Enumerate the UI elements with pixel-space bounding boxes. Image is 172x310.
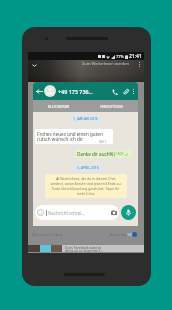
button[interactable]: Nachricht schrei… bbox=[35, 205, 119, 220]
staticText: Does Facebook want to dress up as Snapch… bbox=[65, 245, 103, 252]
staticText: Nächstes Video bbox=[32, 232, 63, 238]
staticText: Danke dir auch%) bbox=[77, 151, 115, 157]
staticText: Frohes neues und einen guten rutsch wüns… bbox=[37, 131, 103, 143]
button[interactable]: Nachrichten, die du in diesem Chat bbox=[45, 174, 127, 198]
staticText: Nachricht schrei… bbox=[48, 210, 85, 216]
button[interactable]: BLOCKIEREN bbox=[33, 100, 85, 112]
button[interactable]: Record voice message bbox=[121, 205, 136, 220]
button[interactable]: HINZUFÜGEN bbox=[85, 100, 138, 112]
staticText: 77% bbox=[116, 54, 124, 59]
button[interactable]: Attach bbox=[121, 87, 130, 96]
staticText: 21:41 bbox=[129, 53, 142, 60]
staticText: sendest, sowie Anrufe sind jetzt mit End… bbox=[50, 181, 122, 196]
button[interactable]: More options bbox=[131, 87, 136, 96]
staticText: 1. JANUAR 2016 bbox=[73, 116, 98, 121]
staticText: Autoplay bbox=[110, 232, 128, 238]
staticText: 00:17 bbox=[99, 140, 107, 144]
staticText: BLOCKIEREN bbox=[48, 104, 70, 109]
staticText: +49 173 736… bbox=[58, 88, 93, 95]
staticText: Zum Weiterlesen werden bbox=[82, 61, 129, 66]
staticText: Nachrichten, die du in diesem Chat bbox=[60, 176, 116, 181]
staticText: HINZUFÜGEN bbox=[100, 104, 123, 109]
button[interactable]: Call bbox=[110, 87, 119, 96]
button[interactable]: Back bbox=[35, 87, 43, 95]
staticText: 18:23 bbox=[116, 152, 124, 156]
staticText: 3. APRIL 2016 bbox=[77, 165, 99, 170]
